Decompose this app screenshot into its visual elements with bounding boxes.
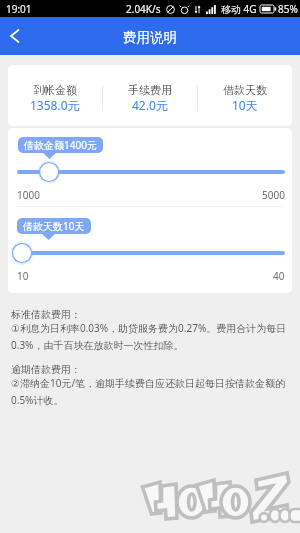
staticText: 借款天数: [223, 83, 267, 97]
staticText: 1000: [17, 188, 40, 202]
staticText: 10天: [232, 97, 258, 113]
staticText: 手续费用: [128, 83, 172, 97]
staticText: 移动 4G: [221, 2, 257, 16]
staticText: 标准借款费用：: [11, 308, 81, 321]
staticText: ①利息为日利率0.03%，助贷服务费为0.27%。费用合计为每日0.3%，由千百…: [11, 321, 289, 352]
staticText: 85%: [278, 2, 298, 16]
staticText: 2.04K/s: [126, 2, 161, 16]
staticText: 逾期借款费用：: [11, 363, 81, 376]
staticText: 1358.0元: [30, 97, 80, 113]
staticText: 10: [17, 269, 29, 283]
staticText: ②滞纳金10元/笔，逾期手续费自应还款日起每日按借款金额的0.5%计收。: [11, 376, 289, 407]
staticText: 借款天数10天: [23, 219, 85, 233]
staticText: 到帐金额: [33, 83, 77, 97]
button[interactable]: Back: [0, 17, 34, 55]
staticText: 42.0元: [132, 97, 168, 113]
staticText: 19:01: [6, 2, 32, 16]
staticText: 费用说明: [123, 29, 177, 46]
staticText: 5000: [262, 188, 285, 202]
staticText: 借款金额1400元: [24, 138, 97, 152]
staticText: 40: [273, 269, 285, 283]
